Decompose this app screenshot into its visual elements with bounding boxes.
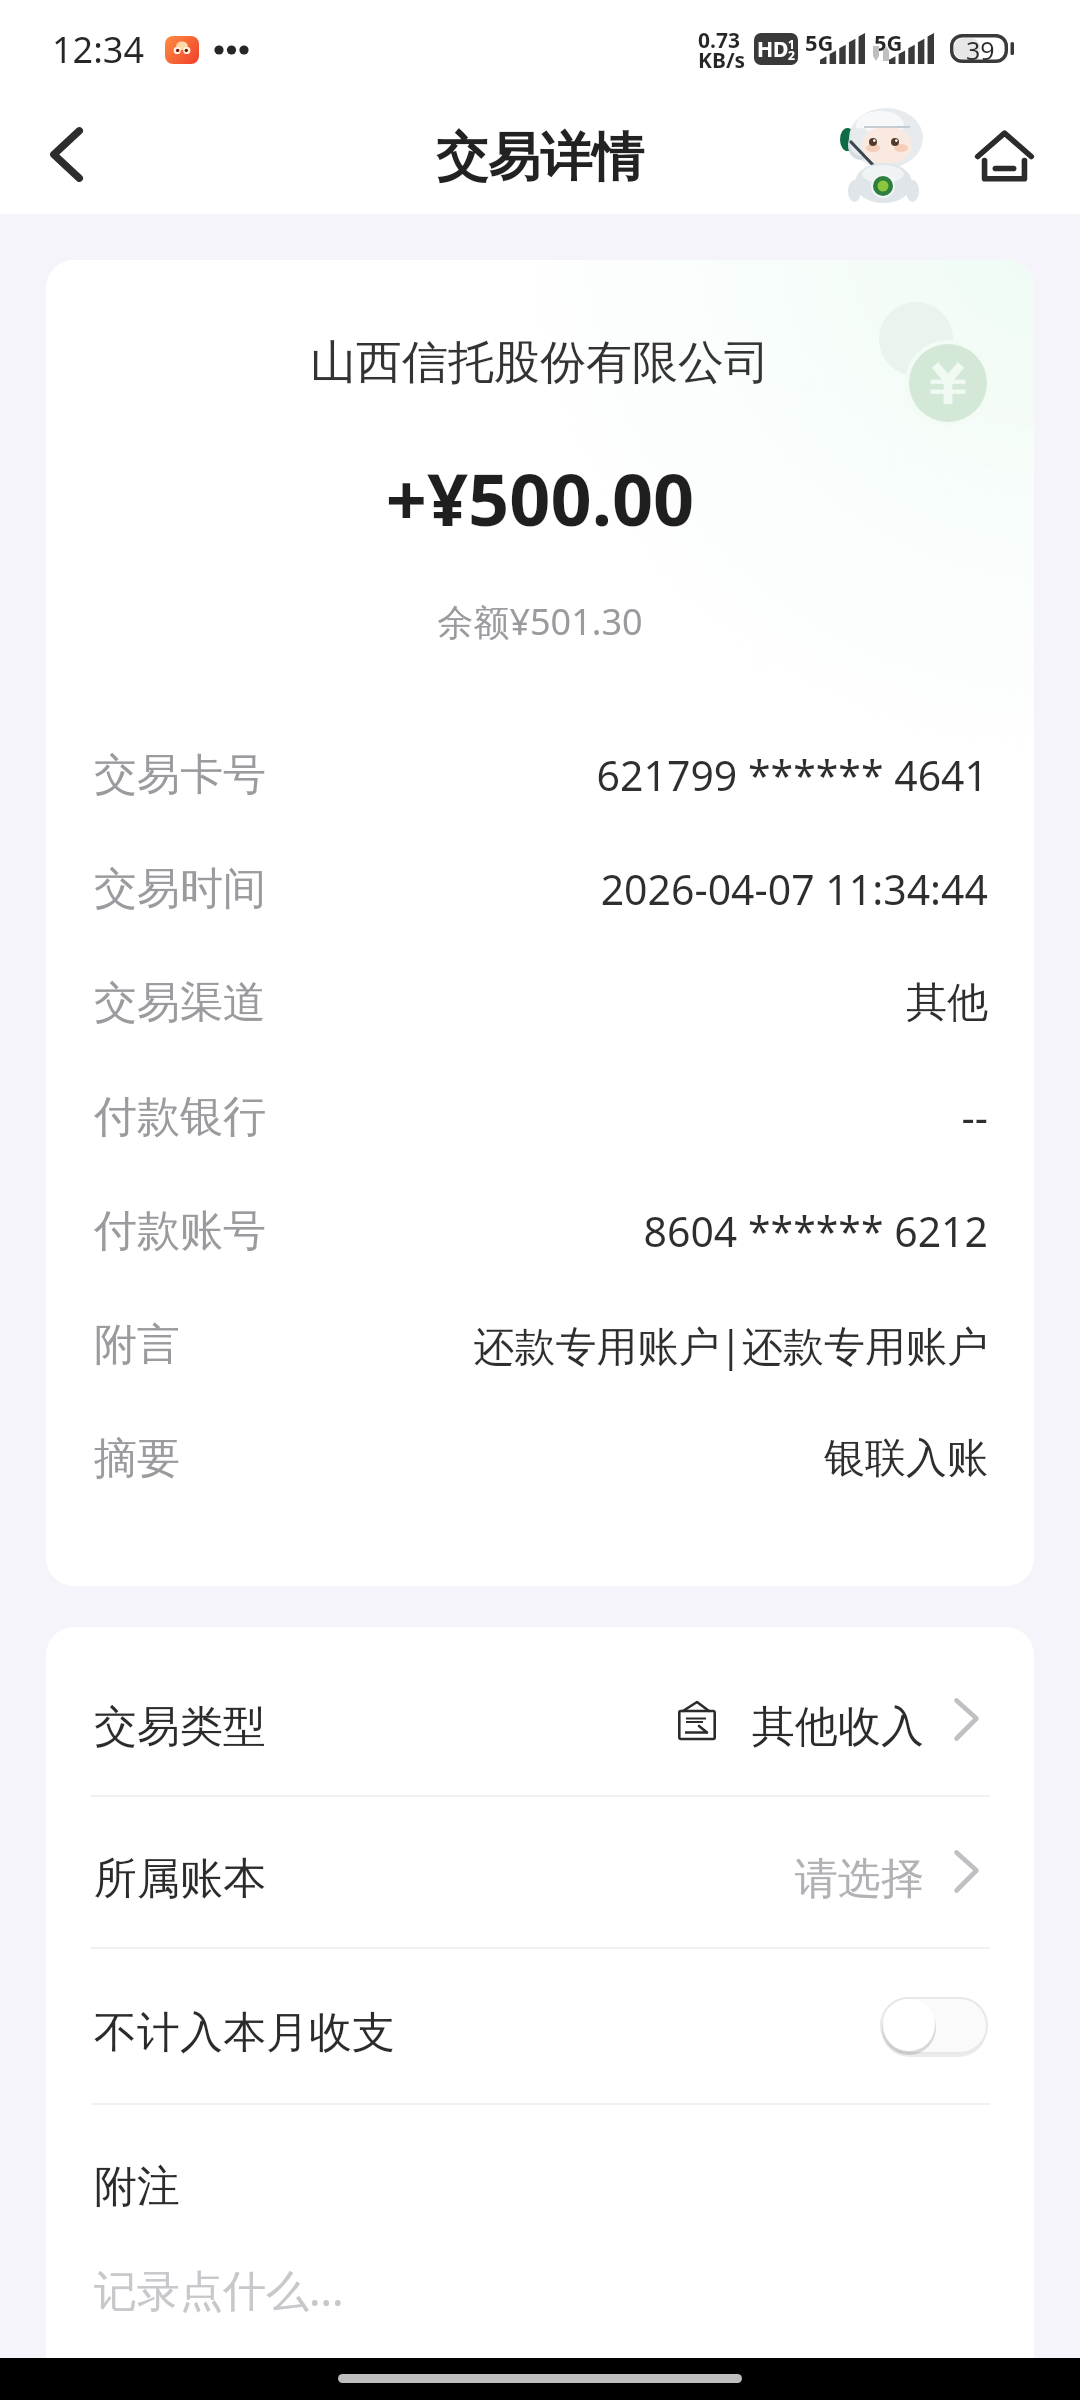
staticText: 其他收入 xyxy=(752,1700,924,1754)
staticText: 39 xyxy=(966,33,995,62)
staticText: 不计入本月收支 xyxy=(94,2006,395,2060)
staticText: 5G xyxy=(874,27,903,57)
staticText: 0.73 KB/s xyxy=(698,26,746,74)
button[interactable]: Back xyxy=(20,108,112,200)
staticText: 请选择 xyxy=(795,1852,924,1906)
staticText: -- xyxy=(961,1089,988,1145)
staticText: 8604 ****** 6212 xyxy=(643,1203,988,1259)
staticText: 付款银行 xyxy=(94,1090,266,1144)
staticText: 2026-04-07 11:34:44 xyxy=(600,861,988,917)
staticText: 摘要 xyxy=(94,1432,180,1486)
button[interactable]: 附注 xyxy=(46,2105,1034,2399)
staticText: 交易时间 xyxy=(94,862,266,916)
staticText: 其他 xyxy=(906,977,988,1029)
staticText: 交易详情 xyxy=(436,125,644,191)
staticText: 621799 ****** 4641 xyxy=(596,747,988,803)
staticText: 记录点什么... xyxy=(94,2260,344,2319)
staticText: 银联入账 xyxy=(824,1433,988,1485)
staticText: 山西信托股份有限公司 xyxy=(46,334,1034,392)
staticText: HD xyxy=(757,35,789,64)
staticText: 付款账号 xyxy=(94,1204,266,1258)
staticText: 附言 xyxy=(94,1318,180,1372)
staticText: 1 2 xyxy=(788,36,795,63)
staticText: 交易类型 xyxy=(94,1700,266,1754)
staticText: 所属账本 xyxy=(94,1852,266,1906)
staticText: 还款专用账户|还款专用账户 xyxy=(473,1317,988,1373)
button[interactable]: 所属账本 xyxy=(94,1797,980,1947)
staticText: 5G xyxy=(805,27,834,57)
staticText: 余额¥501.30 xyxy=(46,597,1034,646)
staticText: 附注 xyxy=(94,2160,180,2214)
button[interactable]: Customer service assistant xyxy=(829,103,933,207)
button[interactable]: 交易类型 xyxy=(94,1645,980,1795)
button[interactable]: 不计入本月收支 xyxy=(94,1949,989,2103)
staticText: 12:34 xyxy=(52,25,145,74)
staticText: 交易渠道 xyxy=(94,976,266,1030)
button[interactable]: Home xyxy=(964,116,1044,196)
staticText: 交易卡号 xyxy=(94,748,266,802)
staticText: +¥500.00 xyxy=(46,449,1034,547)
